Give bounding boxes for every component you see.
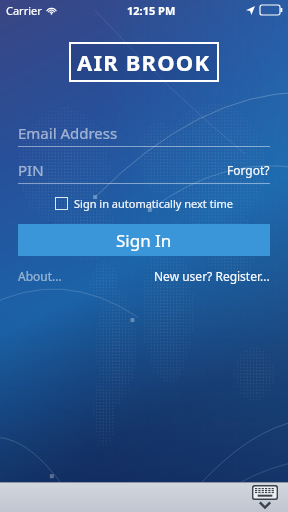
staticText: Sign In bbox=[116, 229, 172, 252]
button[interactable]: Hide keyboard bbox=[252, 485, 278, 509]
staticText: New user? Register... bbox=[154, 268, 270, 284]
staticText: PIN bbox=[18, 160, 44, 180]
button[interactable]: PIN bbox=[18, 157, 270, 183]
button[interactable]: Forgot? bbox=[227, 162, 270, 178]
staticText: Email Address bbox=[18, 123, 118, 143]
staticText: 12:15 PM bbox=[127, 3, 176, 18]
button[interactable]: New user? Register... bbox=[154, 266, 270, 286]
button[interactable]: About... bbox=[18, 266, 62, 286]
staticText: Carrier bbox=[6, 3, 42, 18]
staticText: AIR BROOK bbox=[77, 47, 211, 77]
staticText: Forgot? bbox=[227, 162, 270, 178]
staticText: Sign in automatically next time bbox=[74, 196, 233, 211]
button[interactable]: Sign in automatically next time bbox=[0, 192, 288, 215]
staticText: About... bbox=[18, 268, 62, 284]
button[interactable]: Sign In bbox=[18, 224, 270, 256]
button[interactable]: Email Address bbox=[18, 120, 270, 146]
